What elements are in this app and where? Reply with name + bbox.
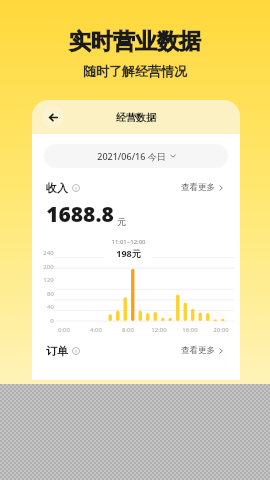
staticText: 16:00	[182, 326, 198, 334]
staticText: 经营数据	[116, 111, 156, 124]
staticText: 元	[117, 216, 126, 227]
staticText: 120	[43, 276, 54, 284]
staticText: 40	[47, 303, 54, 311]
staticText: 0	[50, 317, 54, 325]
staticText: 200	[43, 263, 54, 271]
staticText: 8:00	[122, 326, 134, 334]
button[interactable]: 2021/06/16 今日	[44, 144, 228, 168]
staticText: 80	[47, 290, 54, 298]
staticText: 订单	[46, 344, 68, 358]
staticText: 实时营业数据	[69, 28, 201, 56]
button[interactable]: Back	[42, 106, 64, 128]
staticText: 查看更多	[181, 182, 215, 193]
staticText: 随时了解经营情况	[83, 63, 187, 79]
staticText: 240	[43, 249, 54, 257]
staticText: 12:00	[151, 326, 167, 334]
staticText: 11:01~12:00	[111, 238, 146, 246]
staticText: 0:00	[58, 326, 70, 334]
staticText: 查看更多	[181, 345, 215, 356]
staticText: 4:00	[90, 326, 102, 334]
staticText: 198元	[116, 247, 141, 259]
button[interactable]: 查看更多	[179, 180, 226, 195]
staticText: 20:00	[213, 326, 229, 334]
staticText: 收入	[46, 181, 68, 195]
staticText: 2021/06/16 今日	[97, 150, 166, 162]
staticText: 1688.8	[46, 200, 114, 229]
button[interactable]: 查看更多	[179, 343, 226, 358]
